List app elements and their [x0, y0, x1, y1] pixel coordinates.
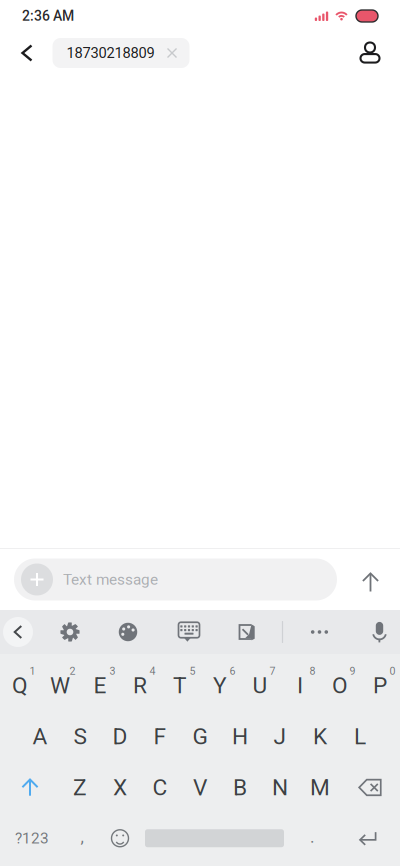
button[interactable]: Emoji: [100, 813, 140, 863]
button[interactable]: U: [240, 660, 280, 711]
button[interactable]: Q: [0, 660, 40, 711]
staticText: W: [50, 672, 70, 699]
button[interactable]: J: [260, 711, 300, 762]
button[interactable]: B: [220, 762, 260, 813]
staticText: N: [272, 774, 288, 801]
staticText: Y: [213, 672, 227, 699]
staticText: E: [93, 672, 106, 699]
button[interactable]: 18730218809: [52, 38, 189, 68]
button[interactable]: K: [300, 711, 340, 762]
staticText: 18730218809: [66, 44, 154, 62]
button[interactable]: P: [360, 660, 400, 711]
button[interactable]: X: [100, 762, 140, 813]
staticText: G: [192, 723, 207, 750]
staticText: Q: [12, 672, 28, 699]
button[interactable]: A: [20, 711, 60, 762]
button[interactable]: E: [80, 660, 120, 711]
staticText: L: [354, 723, 366, 750]
button[interactable]: Keyboard layout: [160, 610, 218, 654]
staticText: 0: [389, 665, 395, 677]
staticText: 1: [29, 665, 35, 677]
button[interactable]: Shift: [0, 762, 60, 813]
staticText: 7: [269, 665, 275, 677]
staticText: A: [32, 723, 47, 750]
button[interactable]: N: [260, 762, 300, 813]
button[interactable]: Settings: [44, 610, 96, 654]
staticText: ,: [80, 827, 83, 847]
button[interactable]: D: [100, 711, 140, 762]
button[interactable]: G: [180, 711, 220, 762]
staticText: T: [173, 672, 187, 699]
button[interactable]: Themes: [96, 610, 160, 654]
button[interactable]: O: [320, 660, 360, 711]
button[interactable]: ,: [64, 813, 100, 863]
staticText: M: [310, 774, 330, 801]
staticText: C: [152, 774, 167, 801]
button[interactable]: Text message: [14, 558, 337, 600]
button[interactable]: Resize keyboard: [218, 610, 277, 654]
button[interactable]: W: [40, 660, 80, 711]
staticText: H: [232, 723, 248, 750]
staticText: K: [313, 723, 327, 750]
staticText: O: [332, 672, 348, 699]
button[interactable]: Back: [5, 32, 52, 74]
button[interactable]: Voice input: [351, 610, 400, 654]
staticText: 3: [109, 665, 115, 677]
button[interactable]: Collapse toolbar: [0, 610, 44, 654]
staticText: 8: [309, 665, 315, 677]
staticText: X: [113, 774, 127, 801]
staticText: 2: [69, 665, 75, 677]
button[interactable]: Enter: [336, 813, 400, 863]
staticText: 6: [229, 665, 235, 677]
staticText: U: [252, 672, 267, 699]
button[interactable]: H: [220, 711, 260, 762]
button[interactable]: More options: [288, 610, 351, 654]
button[interactable]: V: [180, 762, 220, 813]
staticText: ?123: [15, 829, 49, 847]
button[interactable]: Send: [337, 555, 392, 603]
staticText: V: [193, 774, 207, 801]
staticText: .: [310, 827, 315, 847]
staticText: I: [297, 672, 303, 699]
button[interactable]: T: [160, 660, 200, 711]
staticText: S: [73, 723, 86, 750]
button[interactable]: L: [340, 711, 380, 762]
button[interactable]: Y: [200, 660, 240, 711]
button[interactable]: S: [60, 711, 100, 762]
button[interactable]: R: [120, 660, 160, 711]
button[interactable]: Backspace: [340, 762, 400, 813]
staticText: 5: [189, 665, 195, 677]
button[interactable]: ?123: [0, 813, 64, 863]
staticText: F: [153, 723, 166, 750]
staticText: Text message: [63, 570, 158, 588]
button[interactable]: Space: [140, 813, 289, 863]
button[interactable]: I: [280, 660, 320, 711]
staticText: 2:36 AM: [22, 8, 74, 24]
button[interactable]: F: [140, 711, 180, 762]
staticText: J: [273, 723, 286, 750]
staticText: 9: [349, 665, 355, 677]
button[interactable]: .: [289, 813, 336, 863]
staticText: Z: [73, 774, 87, 801]
button[interactable]: Contact info: [352, 32, 388, 74]
button[interactable]: C: [140, 762, 180, 813]
staticText: R: [133, 672, 147, 699]
staticText: D: [112, 723, 127, 750]
staticText: P: [373, 672, 387, 699]
staticText: 4: [149, 665, 155, 677]
button[interactable]: Z: [60, 762, 100, 813]
button[interactable]: M: [300, 762, 340, 813]
staticText: B: [233, 774, 247, 801]
